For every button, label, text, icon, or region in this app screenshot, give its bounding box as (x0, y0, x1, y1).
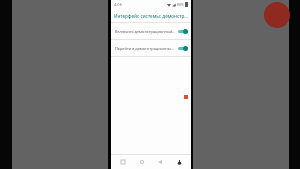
staticText: 4:06 (114, 2, 122, 7)
button[interactable]: Включить демонстрационный режим (111, 23, 191, 39)
staticText: Перейти в демонстрационный режим (115, 46, 176, 51)
staticText: 88% (177, 2, 184, 7)
button[interactable]: Toggle demo mode (178, 28, 188, 34)
staticText: Включить демонстрационный режим (115, 29, 176, 34)
button[interactable]: Back (154, 156, 166, 168)
button[interactable]: Recents (117, 156, 129, 168)
staticText: Интерфейс системы: демонстрация (113, 13, 189, 19)
other: Recording indicator (264, 2, 290, 28)
button[interactable]: Toggle demo mode (178, 45, 188, 51)
button[interactable]: Screenshot (173, 156, 185, 168)
button[interactable]: Перейти в демонстрационный режим (111, 40, 191, 56)
button[interactable]: Home (136, 156, 148, 168)
